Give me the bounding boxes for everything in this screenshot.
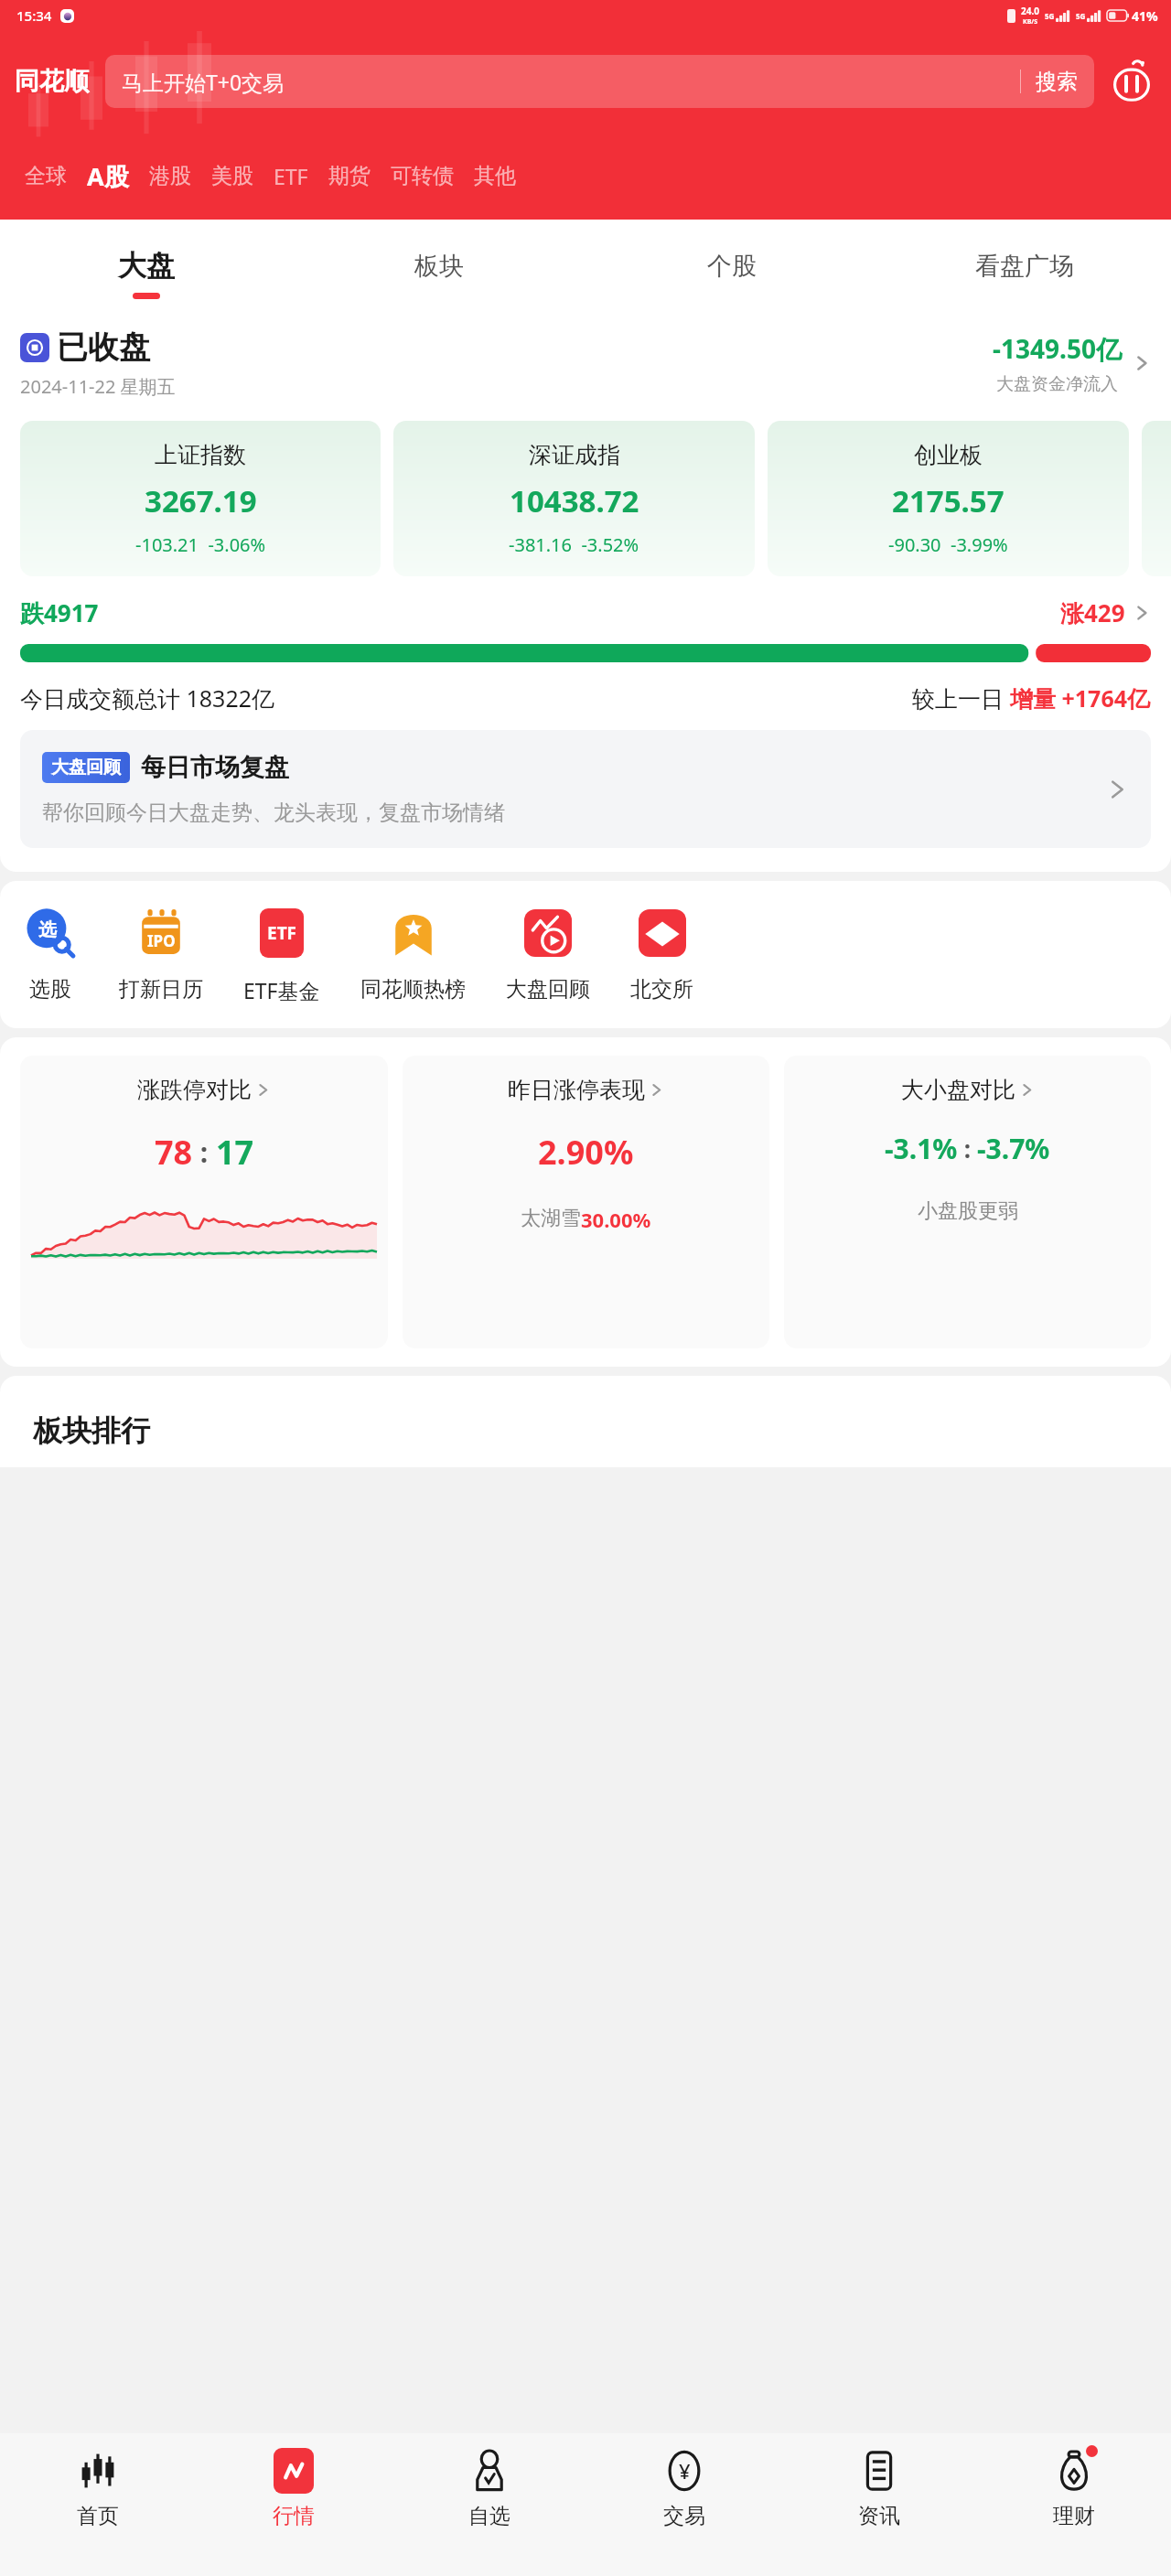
staticText: ¥ [679,2457,691,2485]
staticText: 创业板 [914,441,983,469]
staticText: 个股 [707,251,757,282]
button[interactable]: 跌4917 [0,596,1171,662]
staticText: 其他 [474,163,516,189]
button[interactable]: ETF [263,156,318,196]
staticText: 上证指数 [155,441,246,469]
staticText: 大盘 [118,248,175,284]
staticText: 已收盘 [57,327,150,367]
staticText: 涨跌停对比 [137,1076,252,1104]
staticText: 搜索 [1036,69,1078,95]
button[interactable]: 北交所 [630,905,693,1003]
button[interactable]: 昨日涨停表现 [403,1056,769,1348]
staticText: 5G [1045,11,1055,21]
button[interactable]: 同花顺 [15,66,89,97]
staticText: 打新日历 [119,976,203,1003]
staticText: KB/S [1023,17,1038,27]
button[interactable]: 同花顺热榜 [360,905,466,1003]
staticText: 资讯 [858,2503,900,2529]
staticText: 马上开始T+0交易 [122,68,285,96]
button[interactable]: 上证指数 [20,421,381,576]
button[interactable]: 选 [22,905,79,1003]
staticText: 首页 [77,2503,119,2529]
button[interactable]: 首页 [0,2433,196,2576]
staticText: 选股 [29,976,71,1003]
staticText: 2.90% [538,1130,634,1175]
button[interactable]: 美股 [201,157,263,195]
staticText: 大盘回顾 [51,757,121,778]
staticText: 太湖雪 [521,1206,581,1231]
staticText: 板块排行 [33,1412,150,1449]
button[interactable]: 涨跌停对比 [20,1056,388,1348]
staticText: 港股 [149,163,191,189]
staticText: A股 [87,159,129,193]
button[interactable]: ETF [243,905,320,1004]
button[interactable]: 行情 [196,2433,392,2576]
staticText: -381.16 -3.52% [509,532,639,557]
staticText: 小盘股更弱 [918,1198,1018,1224]
button[interactable]: 看盘广场 [878,220,1171,327]
staticText: 17 [216,1130,254,1175]
button[interactable]: 其他 [464,157,526,195]
staticText: 昨日涨停表现 [508,1076,645,1104]
staticText: -1349.50亿 [993,331,1122,366]
button[interactable]: 马上开始T+0交易 [105,55,1094,108]
staticText: 美股 [211,163,253,189]
staticText: 大盘资金净流入 [996,373,1118,395]
staticText: 自选 [468,2503,510,2529]
button[interactable]: 创业板 [768,421,1129,576]
staticText: 选 [38,918,57,941]
button[interactable]: 大盘回顾 [20,730,1151,848]
staticText: 北交所 [630,976,693,1003]
staticText: 24.0 [1021,5,1039,17]
staticText: 每日市场复盘 [141,752,289,783]
staticText: 期货 [328,163,371,189]
button[interactable]: 全球 [15,157,77,195]
staticText: 30.00% [581,1206,651,1233]
staticText: 10438.72 [510,480,639,521]
staticText: : [958,1132,977,1165]
staticText: 41% [1132,7,1158,25]
staticText: -103.21 -3.06% [135,532,266,557]
button[interactable]: A股 [77,154,139,199]
button[interactable]: 资讯 [781,2433,976,2576]
button[interactable]: 自选 [392,2433,586,2576]
button[interactable]: 可转债 [381,157,464,195]
staticText: ETF [267,921,297,945]
button[interactable]: 大盘 [0,220,293,327]
staticText: ETF基金 [243,976,320,1004]
staticText: 全球 [25,163,67,189]
button[interactable]: ¥ [586,2433,781,2576]
staticText: 帮你回顾今日大盘走势、龙头表现，复盘市场情绪 [42,800,505,826]
staticText: 涨429 [1060,596,1125,629]
staticText: 看盘广场 [975,251,1074,282]
button[interactable] [1142,421,1171,576]
button[interactable]: 个股 [585,220,878,327]
staticText: 大盘回顾 [506,976,590,1003]
staticText: 2024-11-22 星期五 [20,374,176,399]
staticText: 行情 [273,2503,315,2529]
button[interactable]: 大盘回顾 [506,905,590,1003]
staticText: : [193,1133,216,1171]
staticText: IPO [147,930,176,951]
staticText: -3.7% [977,1130,1050,1167]
staticText: 3267.19 [145,480,257,521]
staticText: 跌4917 [20,596,99,629]
button[interactable]: 期货 [318,157,381,195]
button[interactable]: 已收盘 [0,327,1171,399]
staticText: 理财 [1053,2503,1095,2529]
button[interactable]: 理财 [976,2433,1171,2576]
button[interactable]: AI助手 [1107,57,1156,106]
staticText: 2175.57 [892,480,1004,521]
staticText: -3.1% [885,1130,958,1167]
staticText: 较上一日 [912,682,1010,714]
staticText: 同花顺热榜 [360,976,466,1003]
button[interactable]: 板块 [293,220,585,327]
staticText: -90.30 -3.99% [888,532,1008,557]
button[interactable]: IPO [119,905,203,1003]
button[interactable]: 大小盘对比 [784,1056,1151,1348]
staticText: 增量 +1764亿 [1010,682,1151,714]
staticText: 深证成指 [529,441,620,469]
button[interactable]: 深证成指 [393,421,755,576]
staticText: 板块 [414,251,464,282]
button[interactable]: 港股 [139,157,201,195]
